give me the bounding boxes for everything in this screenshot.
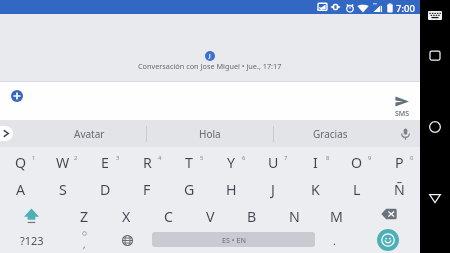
staticText: SMS — [395, 109, 410, 119]
staticText: M — [330, 207, 343, 226]
button[interactable]: Back — [425, 188, 445, 208]
staticText: 7 — [284, 154, 288, 162]
button[interactable]: C — [147, 204, 189, 228]
button[interactable]: R — [126, 150, 168, 175]
staticText: 7:00 — [396, 2, 415, 15]
button[interactable]: L — [336, 177, 378, 202]
button[interactable]: V — [189, 204, 231, 228]
button[interactable]: P — [378, 150, 420, 175]
staticText: X — [122, 207, 131, 226]
staticText: ?123 — [20, 233, 44, 248]
button[interactable]: Backspace — [368, 202, 410, 226]
staticText: C — [164, 207, 173, 226]
staticText: V — [206, 207, 215, 226]
button[interactable]: Q — [0, 150, 42, 175]
staticText: J — [271, 180, 275, 199]
staticText: J — [209, 52, 211, 60]
staticText: G — [184, 180, 195, 199]
button[interactable]: ?123 — [7, 229, 57, 251]
staticText: W — [56, 153, 70, 172]
staticText: 5 — [200, 154, 204, 162]
staticText: F — [143, 180, 151, 199]
button[interactable]: Gracias — [274, 120, 387, 147]
button[interactable]: . — [316, 229, 352, 251]
staticText: N — [289, 207, 300, 226]
staticText: A — [16, 180, 26, 199]
button[interactable]: H — [210, 177, 252, 202]
button[interactable]: Ñ — [378, 177, 420, 202]
staticText: 6 — [242, 154, 246, 162]
button[interactable]: Change language — [106, 229, 148, 251]
staticText: Gracias — [313, 127, 348, 141]
staticText: Ñ — [394, 180, 405, 199]
button[interactable]: M — [315, 204, 357, 228]
staticText: 2 — [74, 154, 78, 162]
staticText: ES • EN — [222, 235, 246, 245]
button[interactable]: G — [168, 177, 210, 202]
button[interactable]: Keyboard — [425, 5, 445, 25]
button[interactable]: Recents — [425, 45, 445, 65]
staticText: , — [83, 238, 86, 250]
button[interactable]: N — [273, 204, 315, 228]
button[interactable]: ES • EN — [152, 232, 315, 247]
button[interactable]: Hola — [146, 120, 274, 147]
staticText: R — [143, 153, 152, 172]
button[interactable]: I — [294, 150, 336, 175]
button[interactable]: W — [42, 150, 84, 175]
staticText: 0 — [410, 154, 414, 162]
button[interactable]: J — [252, 177, 294, 202]
staticText: Q — [15, 153, 27, 172]
staticText: 9 — [368, 154, 372, 162]
staticText: L — [353, 180, 361, 199]
button[interactable]: Home — [425, 117, 445, 137]
staticText: H — [226, 180, 237, 199]
button[interactable]: S — [42, 177, 84, 202]
staticText: 8 — [326, 154, 330, 162]
button[interactable]: Expand suggestions — [0, 126, 13, 141]
button[interactable]: B — [231, 204, 273, 228]
button[interactable]: A — [0, 177, 42, 202]
staticText: Z — [80, 207, 89, 226]
button[interactable]: E — [84, 150, 126, 175]
staticText: S — [59, 180, 67, 199]
staticText: Y — [227, 153, 236, 172]
button[interactable]: X — [105, 204, 147, 228]
button[interactable]: T — [168, 150, 210, 175]
staticText: . — [333, 233, 336, 248]
button[interactable]: Y — [210, 150, 252, 175]
button[interactable]: O — [336, 150, 378, 175]
staticText: U — [268, 153, 279, 172]
staticText: Conversación con Jose Miguel • jue., 17:… — [138, 61, 282, 71]
staticText: P — [395, 153, 404, 172]
button[interactable]: , — [63, 229, 105, 251]
button[interactable]: F — [126, 177, 168, 202]
staticText: B — [247, 207, 257, 226]
staticText: K — [311, 180, 320, 199]
button[interactable]: Add attachment — [11, 90, 23, 102]
button[interactable]: Send SMS — [392, 96, 412, 119]
button[interactable]: Avatar — [33, 120, 146, 147]
button[interactable]: Emoji — [377, 229, 399, 251]
staticText: 3 — [116, 154, 120, 162]
button[interactable]: Z — [63, 204, 105, 228]
staticText: T — [185, 153, 193, 172]
button[interactable]: K — [294, 177, 336, 202]
staticText: Hola — [199, 127, 221, 141]
button[interactable]: U — [252, 150, 294, 175]
button[interactable]: Voice input — [390, 120, 420, 147]
staticText: O — [351, 153, 363, 172]
staticText: E — [101, 153, 109, 172]
button[interactable]: Shift — [10, 203, 52, 227]
staticText: 1 — [32, 154, 36, 162]
staticText: I — [313, 153, 318, 172]
button[interactable]: D — [84, 177, 126, 202]
staticText: D — [100, 180, 111, 199]
staticText: 4 — [158, 154, 162, 162]
staticText: Avatar — [74, 127, 105, 141]
